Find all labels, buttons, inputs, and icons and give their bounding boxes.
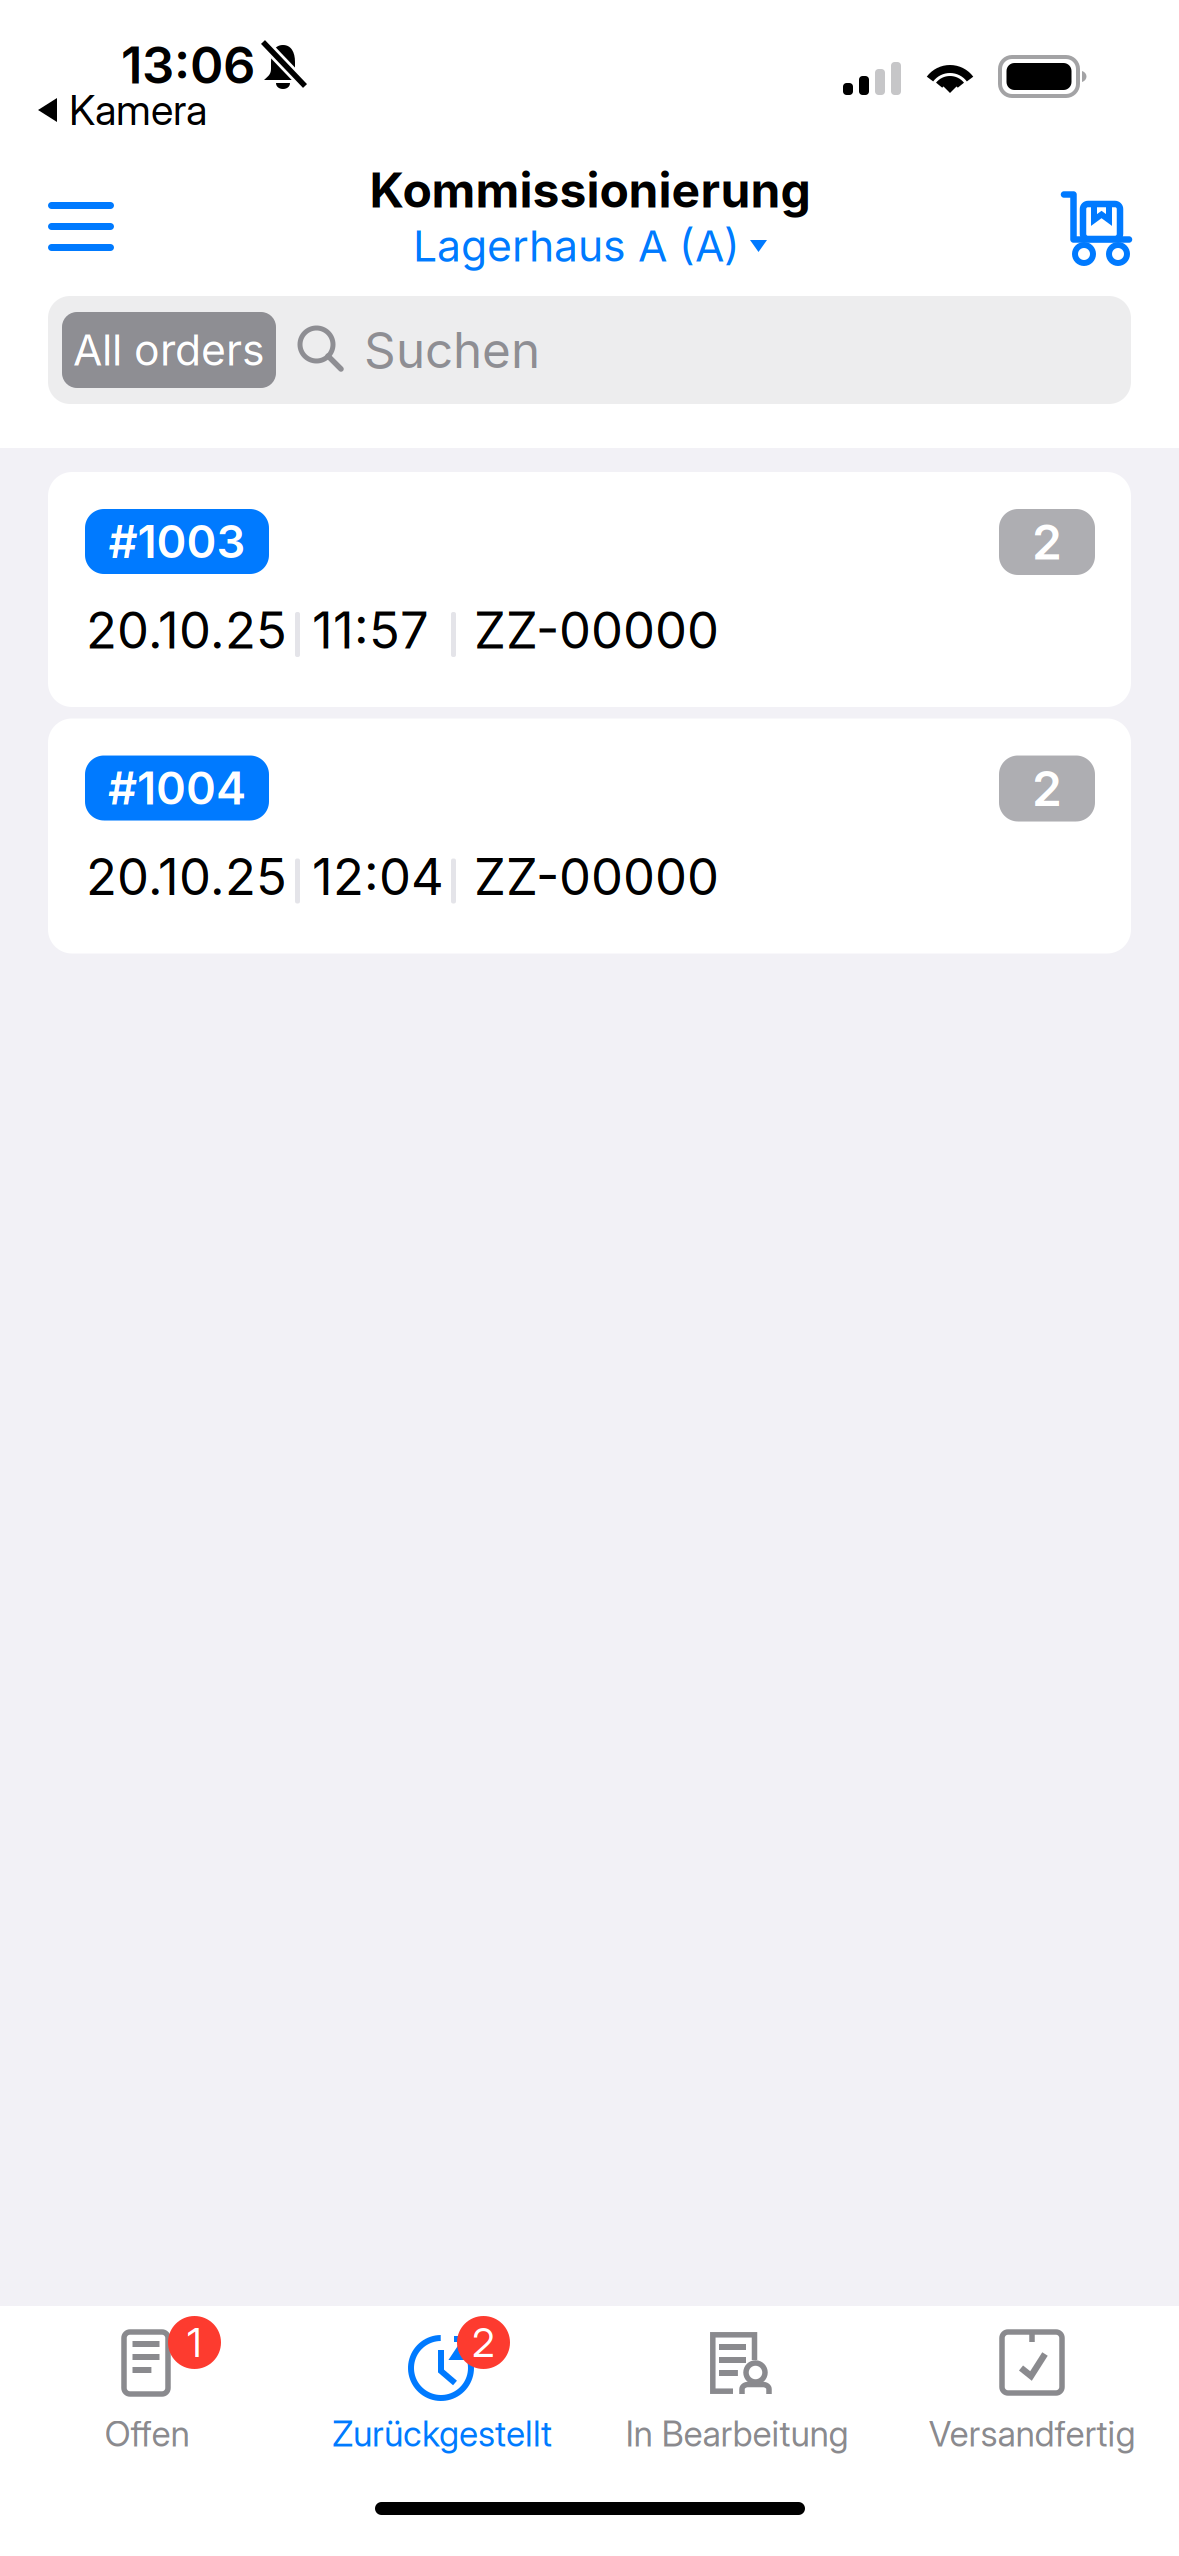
staticText: #1004 xyxy=(108,761,246,815)
staticText: Suchen xyxy=(364,320,540,380)
staticText: 2 xyxy=(472,2318,495,2367)
button[interactable]: 1 xyxy=(0,2306,294,2466)
staticText: ZZ-00000 xyxy=(474,599,719,661)
staticText: 20.10.25 xyxy=(86,599,287,661)
staticText: 12:04 xyxy=(312,846,444,907)
staticText: Kamera xyxy=(69,85,207,135)
staticText: In Bearbeitung xyxy=(625,2413,848,2455)
staticText: #1003 xyxy=(108,514,245,569)
button[interactable]: Versandfertig xyxy=(885,2306,1179,2466)
button[interactable]: Lagerhaus A (A) xyxy=(380,221,800,271)
staticText: 13:06 xyxy=(121,34,255,96)
button[interactable]: All orders xyxy=(62,312,276,388)
button[interactable]: #1004 xyxy=(48,718,1131,953)
staticText: ZZ-00000 xyxy=(474,846,719,907)
staticText: Kommissionierung xyxy=(369,161,810,219)
staticText: 11:57 xyxy=(312,599,429,661)
staticText: All orders xyxy=(73,324,265,376)
staticText: Versandfertig xyxy=(928,2413,1135,2455)
button[interactable]: Cart xyxy=(1034,177,1158,275)
staticText: Zurückgestellt xyxy=(332,2413,552,2455)
button[interactable]: Menu xyxy=(19,177,143,275)
staticText: Offen xyxy=(104,2413,189,2455)
button[interactable]: #1003 xyxy=(48,472,1131,707)
staticText: Lagerhaus A (A) xyxy=(413,220,740,272)
staticText: 20.10.25 xyxy=(86,846,287,907)
button[interactable]: 2 xyxy=(295,2306,589,2466)
staticText: 2 xyxy=(1032,759,1062,818)
staticText: 2 xyxy=(1032,513,1062,571)
staticText: 1 xyxy=(187,2318,202,2367)
button[interactable]: In Bearbeitung xyxy=(590,2306,884,2466)
button[interactable]: Kamera xyxy=(38,88,238,132)
